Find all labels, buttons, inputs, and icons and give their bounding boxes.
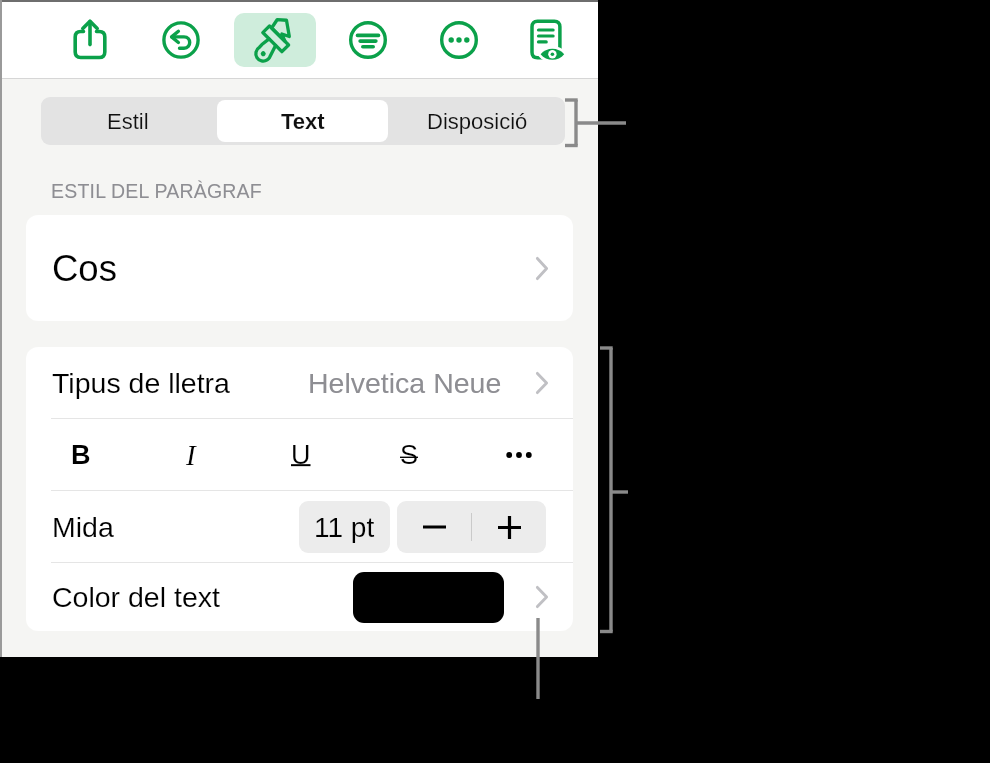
staticText: I <box>186 439 196 471</box>
button[interactable]: Share <box>60 10 120 70</box>
staticText: Disposició <box>427 109 528 134</box>
button[interactable]: I <box>136 419 246 490</box>
staticText: ESTIL DEL PARÀGRAF <box>51 180 262 202</box>
staticText: Estil <box>107 109 149 134</box>
staticText: 11 pt <box>314 512 375 543</box>
staticText: Tipus de lletra <box>52 367 230 399</box>
button[interactable]: 11 pt <box>299 501 390 553</box>
button[interactable]: Increase size <box>472 501 546 553</box>
button[interactable]: Cos <box>26 215 573 321</box>
button[interactable]: Estil <box>43 100 213 142</box>
button[interactable]: Text <box>217 100 388 142</box>
button[interactable]: Decrease size <box>397 501 471 553</box>
button[interactable]: More text options <box>464 419 573 490</box>
staticText: U <box>291 440 311 470</box>
button[interactable]: Document options <box>516 10 576 70</box>
staticText: Mida <box>52 511 114 543</box>
staticText: Text <box>281 109 325 134</box>
button[interactable]: Tipus de lletra <box>26 347 573 418</box>
button[interactable]: U <box>246 419 355 490</box>
button[interactable]: Paragraph style <box>338 10 398 70</box>
button[interactable]: Undo <box>151 10 211 70</box>
button[interactable]: S <box>355 419 464 490</box>
button[interactable]: Format <box>234 13 316 67</box>
staticText: S <box>400 440 419 470</box>
button[interactable]: Color del text <box>26 563 573 631</box>
staticText: B <box>71 440 91 470</box>
button[interactable]: Disposició <box>392 100 563 142</box>
button[interactable]: More options <box>429 10 489 70</box>
button[interactable]: B <box>26 419 136 490</box>
button[interactable]: Text colour <box>353 572 504 623</box>
staticText: Cos <box>52 248 117 289</box>
staticText: Helvetica Neue <box>308 367 502 399</box>
button[interactable]: Format brush <box>245 10 305 70</box>
staticText: Color del text <box>52 581 220 613</box>
